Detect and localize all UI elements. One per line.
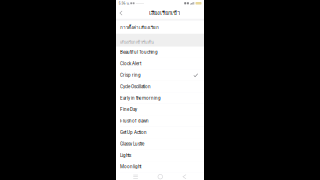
button[interactable]: Get Up Action — [116, 127, 204, 138]
button[interactable]: Early in the morning — [116, 93, 204, 104]
staticText: Flush of dawn — [120, 118, 149, 124]
button[interactable]: Cycle Oscillation — [116, 81, 204, 92]
button[interactable]: Fine Day — [116, 104, 204, 115]
button[interactable]: Back — [116, 8, 125, 17]
staticText: Clock Alert — [120, 61, 141, 66]
staticText: Moonlight — [120, 164, 141, 169]
button[interactable]: Lights — [116, 150, 204, 161]
button[interactable]: Home — [156, 172, 165, 180]
staticText: เสียงเรียกเข้า — [149, 8, 180, 18]
staticText: Beautiful Touching — [120, 50, 158, 55]
button[interactable]: Back — [180, 172, 189, 180]
staticText: Glassy Lustre — [120, 141, 144, 147]
staticText: Crisp ring — [120, 73, 141, 78]
button[interactable]: Recent apps — [131, 172, 141, 180]
staticText: การตั้งค่าเสียงเรียก — [120, 24, 159, 31]
staticText: Cycle Oscillation — [120, 84, 151, 89]
staticText: Early in the morning — [120, 95, 161, 101]
button[interactable]: Flush of dawn — [116, 115, 204, 127]
button[interactable]: Crisp ring — [116, 70, 204, 81]
button[interactable]: Moonlight — [116, 161, 204, 173]
button[interactable]: Clock Alert — [116, 58, 204, 70]
button[interactable]: การตั้งค่าเสียงเรียก — [116, 21, 204, 34]
staticText: Fine Day — [120, 107, 137, 112]
staticText: Lights — [120, 153, 131, 158]
staticText: 5:36 น. — [118, 0, 129, 6]
button[interactable]: Glassy Lustre — [116, 138, 204, 150]
staticText: เสียงเรียกเข้าเริ่มต้น — [120, 39, 154, 46]
staticText: Get Up Action — [120, 130, 147, 135]
button[interactable]: Beautiful Touching — [116, 47, 204, 58]
